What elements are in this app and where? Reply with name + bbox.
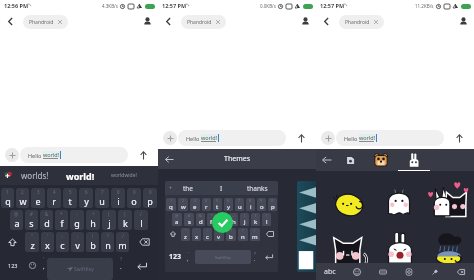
- button[interactable]: world!: [60, 166, 100, 185]
- staticText: +: [232, 213, 235, 218]
- button[interactable]: 2: [16, 188, 29, 208]
- button[interactable]: Recent stickers: [342, 152, 358, 168]
- button[interactable]: Open menu: [0, 166, 16, 185]
- staticText: ): [255, 213, 257, 218]
- button[interactable]: Add attachment: [163, 131, 177, 145]
- staticText: 7: [101, 189, 104, 195]
- button[interactable]: Hello: [20, 147, 128, 163]
- button[interactable]: Send: [452, 131, 466, 145]
- button[interactable]: *: [55, 210, 68, 230]
- button[interactable]: 4: [47, 188, 61, 208]
- staticText: .: [120, 263, 122, 271]
- button[interactable]: Phandroid: [181, 15, 226, 29]
- button[interactable]: ': [41, 232, 54, 252]
- button[interactable]: /: [134, 210, 148, 230]
- button[interactable]: 7: [95, 188, 109, 208]
- button[interactable]: [297, 181, 341, 272]
- button[interactable]: Contact: [140, 14, 155, 29]
- button[interactable]: Send: [294, 131, 308, 145]
- button[interactable]: Contact: [456, 14, 471, 29]
- staticText: w: [181, 203, 186, 211]
- button[interactable]: Pin: [422, 263, 448, 280]
- button[interactable]: @: [10, 210, 23, 230]
- staticText: g: [74, 217, 80, 229]
- staticText: v: [75, 239, 80, 251]
- staticText: /: [122, 233, 124, 239]
- staticText: g: [221, 218, 225, 226]
- staticText: j: [108, 217, 111, 229]
- button[interactable]: Add attachment: [321, 131, 335, 145]
- button[interactable]: /: [116, 232, 129, 252]
- button[interactable]: 123: [3, 256, 23, 274]
- button[interactable]: +: [165, 181, 278, 272]
- button[interactable]: Backspace: [130, 232, 158, 252]
- staticText: Hello: [186, 135, 201, 142]
- staticText: @: [175, 213, 179, 218]
- button[interactable]: !: [86, 232, 99, 252]
- button[interactable]: 5: [63, 188, 77, 208]
- button[interactable]: Back: [319, 152, 335, 168]
- staticText: ?: [107, 233, 109, 239]
- button[interactable]: -: [70, 210, 84, 230]
- button[interactable]: Hello: [336, 130, 444, 146]
- button[interactable]: Emoji: [343, 263, 370, 280]
- staticText: z: [30, 239, 35, 251]
- button[interactable]: Add attachment: [5, 148, 19, 162]
- button[interactable]: Emoji: [24, 256, 40, 274]
- button[interactable]: 9: [127, 188, 141, 208]
- button[interactable]: ?: [117, 256, 125, 276]
- staticText: t: [216, 203, 219, 211]
- staticText: ': [196, 228, 197, 233]
- button[interactable]: Send: [136, 148, 150, 162]
- button[interactable]: Rabbit stickers: [404, 150, 424, 170]
- button[interactable]: ): [118, 210, 132, 230]
- button[interactable]: Phandroid: [23, 15, 68, 29]
- button[interactable]: Space: [47, 258, 113, 280]
- button[interactable]: 6: [79, 188, 93, 208]
- staticText: 123: [169, 252, 182, 262]
- button[interactable]: Back: [319, 14, 334, 29]
- button[interactable]: 0: [143, 188, 157, 208]
- button[interactable]: Hug sticker: [426, 179, 472, 225]
- button[interactable]: ?: [101, 232, 114, 252]
- button[interactable]: Backspace: [448, 263, 474, 280]
- button[interactable]: ;: [71, 232, 84, 252]
- button[interactable]: Phandroid: [339, 15, 384, 29]
- staticText: .: [254, 256, 256, 263]
- button[interactable]: Contact: [298, 14, 313, 29]
- staticText: 1: [170, 198, 173, 203]
- button[interactable]: Black cat sticker: [328, 229, 370, 271]
- button[interactable]: abc: [316, 263, 343, 280]
- button[interactable]: ": [25, 232, 39, 252]
- button[interactable]: GIF: [370, 263, 396, 280]
- staticText: abc: [324, 267, 336, 277]
- button[interactable]: Back: [3, 14, 18, 29]
- button[interactable]: ': [40, 256, 48, 276]
- staticText: 12:57 PM: [320, 2, 345, 9]
- button[interactable]: Chick sticker: [328, 182, 370, 224]
- button[interactable]: Bear stickers: [371, 150, 391, 170]
- button[interactable]: Back: [161, 14, 176, 29]
- button[interactable]: +: [86, 210, 100, 230]
- button[interactable]: 1: [1, 188, 14, 208]
- button[interactable]: 8: [111, 188, 125, 208]
- button[interactable]: Shift: [0, 232, 24, 252]
- button[interactable]: Enter: [128, 256, 156, 276]
- button[interactable]: worldwide!: [104, 166, 144, 185]
- button[interactable]: Ghost sticker: [378, 182, 420, 224]
- staticText: ;: [219, 228, 220, 233]
- staticText: 0: [271, 198, 274, 203]
- button[interactable]: Back: [162, 152, 176, 166]
- button[interactable]: (: [102, 210, 116, 230]
- button[interactable]: :: [56, 232, 69, 252]
- button[interactable]: Rabbit sticker: [378, 227, 422, 271]
- button[interactable]: #: [25, 210, 38, 230]
- button[interactable]: 3: [31, 188, 45, 208]
- button[interactable]: Rain sticker: [428, 227, 470, 269]
- button[interactable]: Hello: [178, 130, 286, 146]
- button[interactable]: &: [40, 210, 53, 230]
- button[interactable]: worlds!: [17, 166, 53, 185]
- button[interactable]: Stickers: [396, 263, 422, 280]
- staticText: n: [241, 233, 245, 241]
